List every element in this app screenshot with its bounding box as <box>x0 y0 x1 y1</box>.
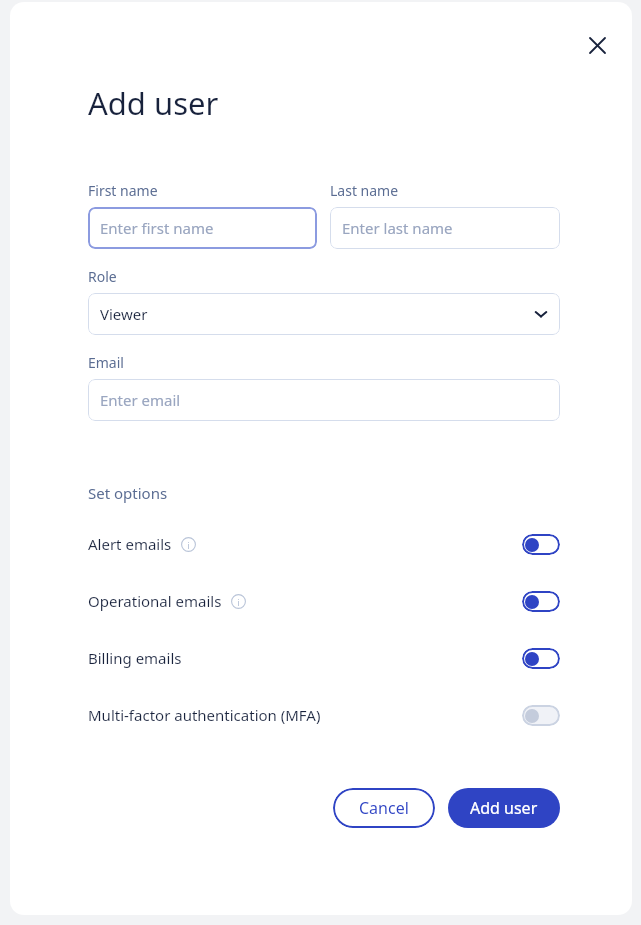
staticText: Last name <box>330 181 399 200</box>
button[interactable]: Toggle on <box>522 534 560 555</box>
staticText: Role <box>88 267 117 286</box>
button[interactable]: Add user <box>448 788 560 828</box>
staticText: Set options <box>88 483 168 503</box>
staticText: Add user <box>470 797 538 819</box>
staticText: i <box>187 539 190 551</box>
staticText: Multi-factor authentication (MFA) <box>88 705 321 725</box>
staticText: Enter last name <box>342 218 453 238</box>
staticText: First name <box>88 181 158 200</box>
staticText: Cancel <box>359 797 409 819</box>
button[interactable]: Alert emails <box>88 527 560 561</box>
button[interactable]: Enter first name <box>88 207 317 249</box>
button[interactable]: Toggle off <box>522 705 560 726</box>
button[interactable]: Billing emails <box>88 641 560 675</box>
button[interactable]: Toggle on <box>522 648 560 669</box>
staticText: i <box>237 596 240 608</box>
button[interactable]: Multi-factor authentication (MFA) <box>88 698 560 732</box>
staticText: Viewer <box>100 304 148 324</box>
staticText: Billing emails <box>88 648 182 668</box>
staticText: Enter first name <box>100 218 214 238</box>
staticText: Enter email <box>100 390 181 410</box>
button[interactable]: Cancel <box>333 788 435 828</box>
button[interactable]: Toggle on <box>522 591 560 612</box>
button[interactable]: Enter email <box>88 379 560 421</box>
staticText: Alert emails <box>88 534 172 554</box>
button[interactable]: Close <box>578 26 616 64</box>
staticText: Add user <box>88 82 219 124</box>
staticText: Email <box>88 353 124 372</box>
button[interactable]: Operational emails <box>88 584 560 618</box>
button[interactable]: Enter last name <box>330 207 560 249</box>
staticText: Operational emails <box>88 591 222 611</box>
button[interactable]: Viewer <box>88 293 560 335</box>
